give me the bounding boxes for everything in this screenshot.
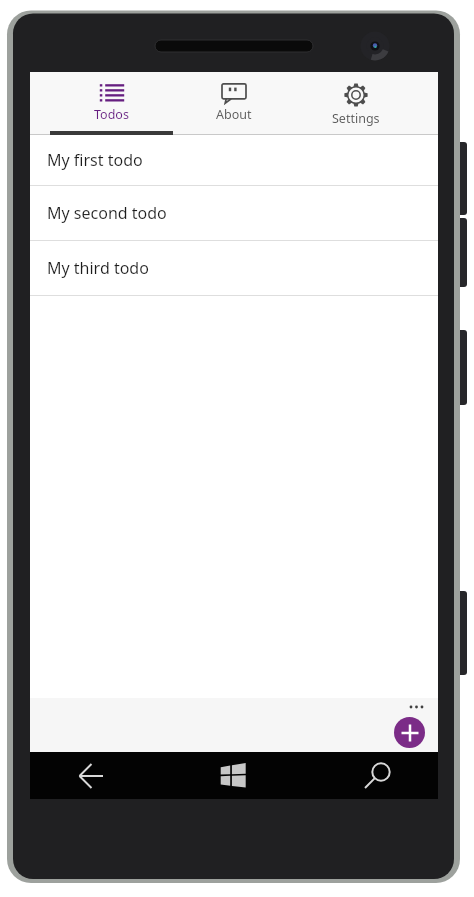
button[interactable] — [166, 752, 302, 799]
button[interactable]: My third todo — [30, 241, 438, 295]
button[interactable] — [30, 752, 166, 799]
button[interactable]: Todos — [50, 72, 173, 135]
button[interactable]: My second todo — [30, 186, 438, 240]
button[interactable]: Settings — [295, 72, 417, 135]
staticText: Todos — [94, 106, 129, 123]
button[interactable] — [394, 717, 425, 748]
staticText: My third todo — [47, 257, 149, 279]
staticText: Settings — [332, 110, 380, 127]
staticText: My first todo — [47, 149, 143, 171]
button[interactable]: About — [173, 72, 295, 135]
staticText: About — [216, 106, 252, 123]
staticText: My second todo — [47, 202, 167, 224]
button[interactable] — [302, 752, 438, 799]
button[interactable] — [407, 700, 431, 714]
button[interactable]: My first todo — [30, 135, 438, 185]
